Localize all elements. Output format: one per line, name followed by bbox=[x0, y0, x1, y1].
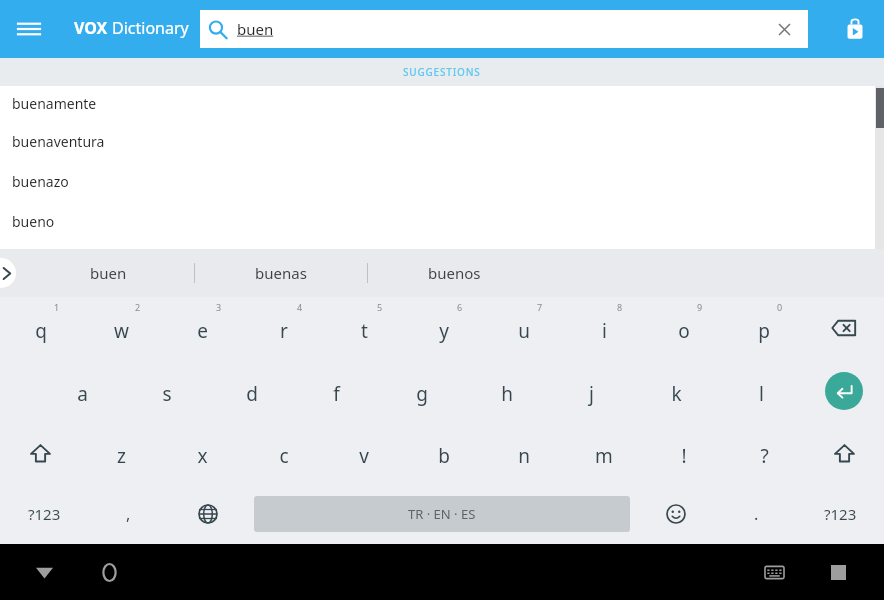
staticText: 4 bbox=[297, 301, 303, 313]
button[interactable]: Clear query bbox=[772, 17, 796, 41]
staticText: buen bbox=[237, 19, 274, 39]
staticText: c bbox=[279, 443, 289, 469]
button[interactable]: k bbox=[634, 359, 719, 422]
button[interactable]: s bbox=[124, 359, 209, 422]
button[interactable]: d bbox=[209, 359, 294, 422]
staticText: 9 bbox=[697, 301, 703, 313]
button[interactable]: ? bbox=[724, 422, 804, 484]
button[interactable]: TR · EN · ES bbox=[254, 496, 630, 532]
button[interactable]: buenamente bbox=[0, 86, 884, 121]
staticText: 6 bbox=[457, 301, 463, 313]
staticText: . bbox=[754, 503, 759, 525]
staticText: z bbox=[117, 443, 126, 469]
button[interactable]: Recent apps bbox=[820, 554, 856, 590]
button[interactable]: Change language bbox=[168, 484, 248, 544]
button[interactable]: Emoji bbox=[636, 484, 716, 544]
staticText: 2 bbox=[135, 301, 141, 313]
button[interactable]: q bbox=[0, 297, 81, 359]
staticText: ? bbox=[760, 443, 769, 469]
staticText: bueno bbox=[12, 212, 55, 231]
button[interactable]: Home bbox=[91, 554, 127, 590]
button[interactable]: Expand suggestions bbox=[0, 258, 16, 288]
button[interactable]: Shift bbox=[804, 422, 884, 484]
staticText: n bbox=[518, 443, 530, 469]
staticText: v bbox=[359, 443, 369, 469]
button[interactable]: u bbox=[484, 297, 564, 359]
staticText: buenazo bbox=[12, 172, 69, 191]
staticText: TR · EN · ES bbox=[408, 505, 476, 523]
button[interactable]: f bbox=[294, 359, 379, 422]
button[interactable]: o bbox=[644, 297, 724, 359]
staticText: u bbox=[518, 318, 530, 344]
button[interactable]: z bbox=[81, 422, 162, 484]
button[interactable]: Shift bbox=[0, 422, 81, 484]
staticText: t bbox=[361, 318, 368, 344]
staticText: 7 bbox=[537, 301, 543, 313]
staticText: 5 bbox=[377, 301, 383, 313]
button[interactable]: , bbox=[88, 484, 168, 544]
button[interactable]: e bbox=[162, 297, 243, 359]
staticText: buenos bbox=[428, 263, 481, 283]
other: Search bbox=[208, 20, 227, 39]
staticText: h bbox=[501, 381, 513, 407]
staticText: f bbox=[333, 381, 340, 407]
button[interactable]: ?123 bbox=[0, 484, 88, 544]
button[interactable]: l bbox=[719, 359, 804, 422]
staticText: b bbox=[438, 443, 450, 469]
button[interactable]: v bbox=[324, 422, 404, 484]
staticText: x bbox=[197, 443, 208, 469]
button[interactable]: y bbox=[404, 297, 484, 359]
staticText: w bbox=[114, 318, 129, 344]
button[interactable]: g bbox=[379, 359, 464, 422]
staticText: i bbox=[602, 318, 607, 344]
staticText: j bbox=[589, 381, 594, 407]
staticText: , bbox=[126, 503, 131, 525]
staticText: buenaventura bbox=[12, 132, 105, 151]
button[interactable]: t bbox=[324, 297, 404, 359]
button[interactable]: bueno bbox=[0, 201, 884, 241]
button[interactable]: b bbox=[404, 422, 484, 484]
button[interactable]: Open navigation menu bbox=[10, 10, 48, 48]
button[interactable]: Open in Play Store bbox=[838, 12, 872, 46]
button[interactable]: p bbox=[724, 297, 804, 359]
staticText: Dictionary bbox=[112, 17, 189, 39]
button[interactable]: Enter bbox=[804, 359, 884, 422]
button[interactable]: Back bbox=[26, 554, 62, 590]
button[interactable]: m bbox=[564, 422, 644, 484]
button[interactable]: a bbox=[40, 359, 124, 422]
button[interactable]: Switch keyboard bbox=[756, 554, 792, 590]
staticText: buenas bbox=[255, 263, 307, 283]
button[interactable]: w bbox=[81, 297, 162, 359]
button[interactable]: j bbox=[549, 359, 634, 422]
staticText: 1 bbox=[54, 301, 60, 313]
button[interactable]: Backspace bbox=[804, 297, 884, 359]
button[interactable]: n bbox=[484, 422, 564, 484]
button[interactable]: c bbox=[243, 422, 324, 484]
staticText: a bbox=[77, 381, 88, 407]
button[interactable]: i bbox=[564, 297, 644, 359]
button[interactable]: Search bbox=[200, 10, 808, 48]
button[interactable]: buenaventura bbox=[0, 121, 884, 161]
staticText: buen bbox=[90, 263, 127, 283]
button[interactable]: . bbox=[716, 484, 796, 544]
staticText: l bbox=[759, 381, 764, 407]
button[interactable]: ?123 bbox=[796, 484, 884, 544]
button[interactable]: buenos bbox=[368, 249, 540, 297]
staticText: SUGGESTIONS bbox=[403, 65, 481, 79]
staticText: VOX bbox=[74, 17, 112, 39]
staticText: q bbox=[35, 318, 47, 344]
staticText: buenamente bbox=[12, 94, 97, 113]
button[interactable]: buen bbox=[22, 249, 194, 297]
button[interactable]: buenazo bbox=[0, 161, 884, 201]
button[interactable]: ! bbox=[644, 422, 724, 484]
staticText: ! bbox=[681, 443, 687, 469]
staticText: g bbox=[416, 381, 428, 407]
staticText: d bbox=[246, 381, 258, 407]
staticText: k bbox=[671, 381, 682, 407]
button[interactable]: h bbox=[464, 359, 549, 422]
button[interactable]: buenas bbox=[195, 249, 367, 297]
staticText: o bbox=[678, 318, 690, 344]
button[interactable]: x bbox=[162, 422, 243, 484]
button[interactable]: r bbox=[243, 297, 324, 359]
staticText: e bbox=[197, 318, 208, 344]
